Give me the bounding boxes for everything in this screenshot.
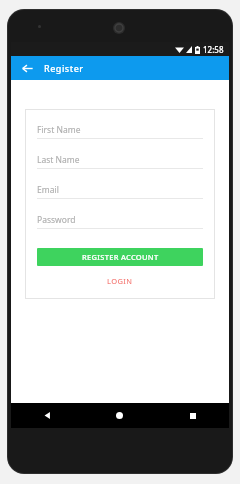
button[interactable]: First Name bbox=[37, 122, 203, 152]
staticText: Last Name bbox=[37, 154, 80, 166]
button[interactable]: Back bbox=[18, 59, 36, 77]
button[interactable]: Last Name bbox=[37, 152, 203, 182]
button[interactable]: Recent apps bbox=[156, 403, 229, 428]
staticText: 12:58 bbox=[203, 44, 224, 55]
staticText: Register bbox=[44, 62, 84, 74]
staticText: Email bbox=[37, 184, 59, 196]
button[interactable]: REGISTER ACCOUNT bbox=[37, 248, 203, 266]
button[interactable]: LOGIN bbox=[25, 273, 215, 288]
staticText: Password bbox=[37, 214, 76, 226]
staticText: LOGIN bbox=[107, 276, 133, 286]
button[interactable]: Back bbox=[11, 403, 83, 428]
button[interactable]: Password bbox=[37, 212, 203, 242]
staticText: REGISTER ACCOUNT bbox=[82, 252, 159, 262]
staticText: First Name bbox=[37, 124, 81, 136]
button[interactable]: Home bbox=[83, 403, 156, 428]
button[interactable]: Email bbox=[37, 182, 203, 212]
